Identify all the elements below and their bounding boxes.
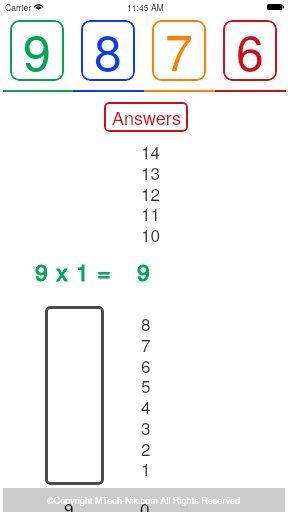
button[interactable]: ©Copyright MTech-Nik.com All Rights Rese… [3, 488, 285, 512]
staticText: 2 [141, 436, 151, 461]
staticText: 9 [137, 255, 151, 285]
other: Battery full [267, 4, 284, 10]
button[interactable]: 8 [81, 20, 135, 81]
staticText: 9 x 1 = [35, 255, 112, 285]
staticText: 4 [141, 394, 151, 419]
staticText: 7 [141, 332, 151, 357]
staticText: 9 [137, 255, 151, 285]
button[interactable]: Answers [104, 102, 188, 132]
button[interactable]: 7 [152, 20, 206, 81]
staticText: 3 [141, 415, 151, 440]
staticText: 9 [64, 496, 74, 512]
button[interactable]: 9 [10, 20, 64, 81]
staticText: 11:45 AM [127, 1, 164, 13]
staticText: 10 [141, 222, 161, 247]
staticText: 7 [165, 20, 193, 75]
staticText: 5 [141, 373, 151, 398]
staticText: 8 [94, 20, 122, 75]
staticText: 14 [141, 139, 161, 164]
staticText: 6 [141, 353, 151, 378]
staticText: 1 [141, 456, 151, 481]
staticText: Carrier [5, 1, 32, 13]
staticText: 6 [236, 20, 264, 75]
staticText: 13 [141, 160, 161, 185]
other: Wi-Fi signal [34, 3, 43, 10]
staticText: ©Copyright MTech-Nik.com All Rights Rese… [47, 494, 241, 507]
staticText: 11 [141, 201, 161, 226]
staticText: Answers [112, 104, 181, 130]
staticText: 9 x 1 = [35, 255, 112, 285]
staticText: 0 [140, 496, 150, 512]
staticText: 12 [141, 181, 161, 206]
staticText: 9 [23, 20, 51, 75]
staticText: 8 [141, 311, 151, 336]
button[interactable]: 6 [223, 20, 277, 81]
button[interactable] [45, 306, 104, 485]
